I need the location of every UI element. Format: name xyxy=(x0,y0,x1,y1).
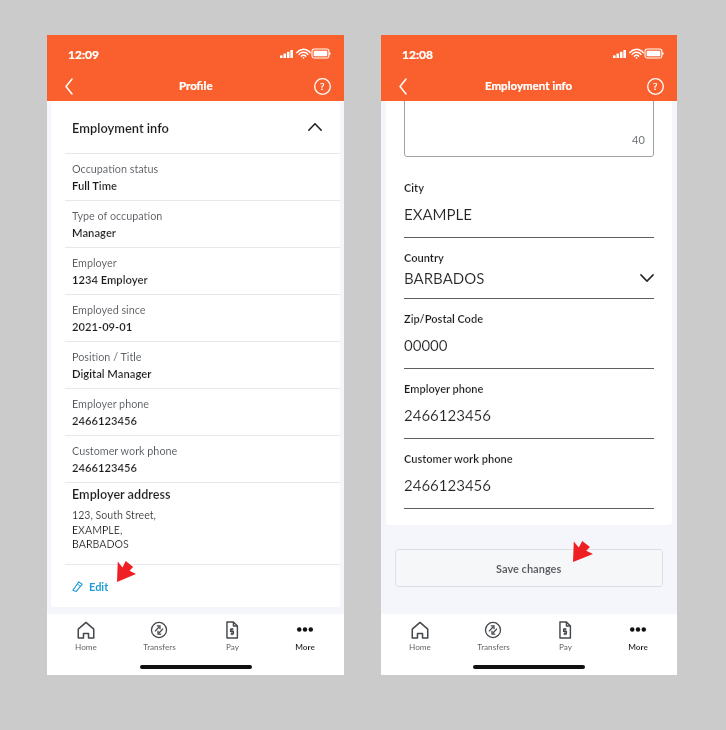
button[interactable]: More xyxy=(271,614,339,658)
button[interactable]: Home xyxy=(386,614,454,658)
button[interactable]: Help xyxy=(309,73,335,99)
button[interactable]: More xyxy=(604,614,672,658)
staticText: Customer work phone xyxy=(72,444,178,457)
staticText: 2021-09-01 xyxy=(72,320,133,333)
staticText: Employment info xyxy=(485,79,573,93)
staticText: Home xyxy=(75,642,97,652)
staticText: 2466123456 xyxy=(404,476,491,494)
staticText: Employer phone xyxy=(404,382,484,395)
staticText: EXAMPLE xyxy=(404,205,472,223)
button[interactable]: Back xyxy=(389,72,417,100)
staticText: Type of occupation xyxy=(72,209,163,222)
staticText: ? xyxy=(320,80,325,92)
staticText: Employment info xyxy=(72,120,169,135)
button[interactable]: Pay xyxy=(198,614,266,658)
staticText: Pay xyxy=(559,642,572,652)
staticText: Employer phone xyxy=(72,397,150,410)
staticText: Zip/Postal Code xyxy=(404,312,484,325)
button[interactable]: Back xyxy=(55,72,83,100)
staticText: Home xyxy=(409,642,431,652)
staticText: Manager xyxy=(72,226,117,239)
staticText: Position / Title xyxy=(72,350,142,363)
staticText: Pay xyxy=(226,642,239,652)
staticText: Save changes xyxy=(496,562,562,575)
staticText: Employer xyxy=(72,256,117,269)
staticText: Transfers xyxy=(143,642,176,652)
staticText: 40 xyxy=(632,133,645,146)
staticText: City xyxy=(404,181,424,194)
staticText: 12:09 xyxy=(68,47,99,61)
button[interactable]: Transfers xyxy=(125,614,193,658)
staticText: Employed since xyxy=(72,303,146,316)
button[interactable]: Employment info xyxy=(51,101,340,153)
staticText: 2466123456 xyxy=(72,414,137,427)
staticText: Full Time xyxy=(72,179,118,192)
staticText: More xyxy=(628,642,648,652)
staticText: Digital Manager xyxy=(72,367,152,380)
button[interactable]: Transfers xyxy=(459,614,527,658)
staticText: Occupation status xyxy=(72,162,159,175)
button[interactable]: Save changes xyxy=(395,549,663,587)
button[interactable]: Edit xyxy=(51,565,340,607)
staticText: More xyxy=(295,642,315,652)
button[interactable]: Home xyxy=(52,614,120,658)
staticText: 1234 Employer xyxy=(72,273,148,286)
button[interactable]: Pay xyxy=(531,614,599,658)
staticText: Transfers xyxy=(477,642,510,652)
staticText: Edit xyxy=(89,580,109,593)
staticText: Customer work phone xyxy=(404,452,513,465)
staticText: 00000 xyxy=(404,336,448,354)
staticText: 123, South Street, EXAMPLE, BARBADOS xyxy=(72,509,156,550)
staticText: Employer address xyxy=(72,487,171,502)
staticText: 2466123456 xyxy=(72,461,137,474)
staticText: 2466123456 xyxy=(404,406,491,424)
staticText: 12:08 xyxy=(402,47,433,61)
button[interactable]: Help xyxy=(642,73,668,99)
staticText: ? xyxy=(653,80,658,92)
staticText: Country xyxy=(404,251,444,264)
staticText: Profile xyxy=(179,79,213,93)
staticText: BARBADOS xyxy=(404,269,485,287)
